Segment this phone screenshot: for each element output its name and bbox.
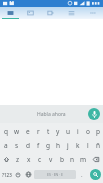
staticText: s [15,141,19,150]
staticText: e [26,127,30,136]
staticText: w [14,127,20,136]
staticText: v [49,155,53,164]
button[interactable]: h [53,139,63,152]
staticText: r [37,127,40,136]
button[interactable]: n [67,153,78,166]
button[interactable]: p [93,124,103,138]
staticText: b [60,155,64,164]
staticText: g [46,141,50,150]
button[interactable]: y [53,124,63,138]
staticText: q [4,127,8,136]
button[interactable]: f [33,139,43,152]
button[interactable]: All [0,7,20,19]
button[interactable]: a [0,139,11,152]
button[interactable]: v [45,153,56,166]
staticText: ES · EN · E [47,172,63,177]
staticText: d [26,141,30,150]
button[interactable]: ñ [93,139,103,152]
staticText: z [16,155,20,164]
button[interactable]: z [13,153,23,166]
staticText: o [86,127,90,136]
staticText: u [66,127,71,136]
button[interactable]: m [78,153,89,166]
staticText: ñ [96,141,101,150]
button[interactable]: More [82,7,103,19]
button[interactable]: d [22,139,33,152]
button[interactable]: b [56,153,67,166]
staticText: h [56,141,61,150]
button[interactable]: Emoji [13,167,23,182]
button[interactable]: j [63,139,73,152]
staticText: p [96,127,100,136]
staticText: f [37,141,40,150]
button[interactable]: s [11,139,22,152]
staticText: x [27,155,31,164]
button[interactable]: . [77,167,87,182]
button[interactable]: Images [20,7,40,19]
button[interactable]: ?123 [0,167,13,182]
staticText: m [80,155,87,164]
staticText: n [70,155,75,164]
button[interactable]: u [63,124,73,138]
staticText: t [47,127,50,136]
staticText: ?123 [2,172,12,178]
button[interactable]: Search [90,169,101,180]
staticText: i [77,127,79,136]
staticText: c [38,155,42,164]
staticText: j [67,141,69,150]
button[interactable]: r [33,124,43,138]
button[interactable]: News [61,7,82,19]
staticText: y [56,127,60,136]
staticText: Habla ahora [37,111,66,118]
button[interactable]: q [0,124,11,138]
button[interactable]: i [73,124,83,138]
button[interactable]: Videos [40,7,61,19]
button[interactable]: Change language [23,167,33,182]
button[interactable]: o [83,124,93,138]
button[interactable]: g [43,139,53,152]
staticText: k [76,141,80,150]
button[interactable]: x [23,153,34,166]
button[interactable]: c [34,153,45,166]
button[interactable]: l [83,139,93,152]
button[interactable]: Space [34,170,76,179]
staticText: l [87,141,89,150]
button[interactable]: Shift [0,153,13,166]
button[interactable]: Backspace [89,153,103,166]
button[interactable]: Voice search [88,108,100,120]
staticText: a [4,141,8,150]
button[interactable]: t [43,124,53,138]
button[interactable]: e [22,124,33,138]
button[interactable]: k [73,139,83,152]
button[interactable]: w [11,124,22,138]
staticText: . [81,171,83,179]
